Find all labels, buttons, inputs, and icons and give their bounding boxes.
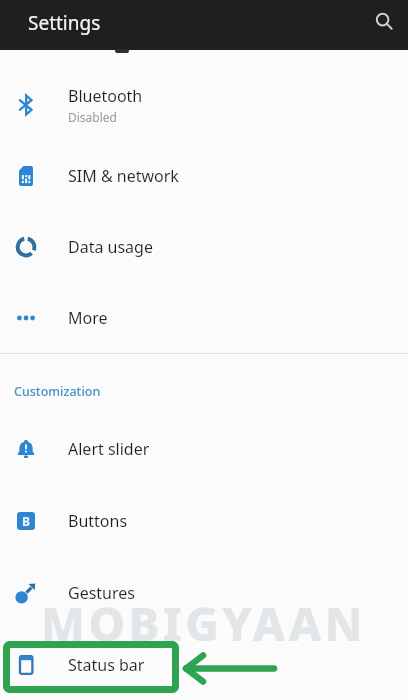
button[interactable]: B (0, 485, 408, 557)
button[interactable]: Gestures (0, 557, 408, 629)
staticText: SIM & network (68, 165, 179, 187)
staticText: Buttons (68, 510, 128, 532)
staticText: Alert slider (68, 438, 150, 460)
staticText: Gestures (68, 582, 135, 604)
button[interactable] (372, 10, 396, 34)
staticText: Settings (28, 10, 101, 36)
button[interactable]: Bluetooth (0, 69, 408, 140)
button[interactable]: More (0, 282, 408, 353)
button[interactable]: Alert slider (0, 413, 408, 485)
staticText: Bluetooth (68, 85, 143, 107)
staticText: More (68, 307, 108, 329)
staticText: B (22, 513, 30, 529)
staticText: Disabled (68, 109, 117, 125)
button[interactable]: Data usage (0, 211, 408, 282)
button[interactable]: Status bar (0, 629, 408, 700)
staticText: Data usage (68, 236, 153, 258)
staticText: Customization (14, 383, 101, 400)
staticText: Status bar (68, 654, 145, 676)
button[interactable]: SIM & network (0, 140, 408, 211)
staticText: MOBIGYAAN (41, 592, 367, 655)
